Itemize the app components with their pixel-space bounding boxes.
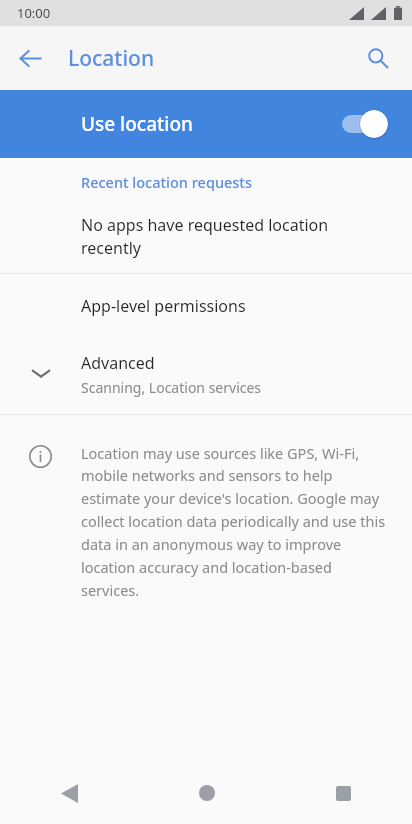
button[interactable]: Home [138,762,275,824]
staticText: 10:00 [17,4,51,22]
button[interactable]: App-level permissions [0,274,412,338]
staticText: App-level permissions [81,295,246,317]
button[interactable]: Back [6,34,54,82]
staticText: Advanced [81,352,155,374]
button[interactable]: Advanced [0,338,412,410]
staticText: Location [68,44,155,73]
staticText: No apps have requested location recently [81,214,392,259]
staticText: Recent location requests [81,172,252,192]
button[interactable]: Search [354,34,402,82]
button[interactable]: Recent apps [275,762,412,824]
staticText: Scanning, Location services [81,378,262,397]
staticText: Location may use sources like GPS, Wi-Fi… [81,443,390,600]
staticText: Use location [81,111,193,137]
button[interactable]: Back [0,762,138,824]
button[interactable]: Use location [0,90,412,158]
button[interactable]: Use location toggle [338,109,390,139]
